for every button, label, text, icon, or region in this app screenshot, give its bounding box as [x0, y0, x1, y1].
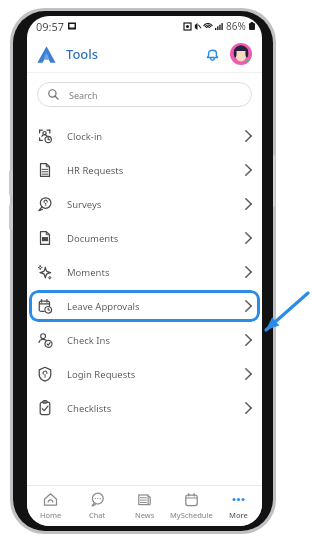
staticText: Check Ins: [67, 334, 110, 347]
staticText: MySchedule: [170, 510, 213, 520]
button[interactable]: Profile: [230, 43, 252, 65]
button[interactable]: Documents: [27, 221, 262, 255]
staticText: Checklists: [67, 402, 112, 415]
button[interactable]: News: [121, 486, 168, 526]
button[interactable]: MySchedule: [168, 486, 215, 526]
button[interactable]: Checklists: [27, 391, 262, 425]
staticText: Home: [40, 510, 62, 520]
button[interactable]: Leave Approvals: [29, 290, 260, 322]
button[interactable]: Chat: [74, 486, 121, 526]
button[interactable]: Notifications: [199, 41, 225, 67]
button[interactable]: HR Requests: [27, 153, 262, 187]
button[interactable]: Moments: [27, 255, 262, 289]
staticText: Login Requests: [67, 368, 136, 381]
staticText: 86%: [226, 19, 246, 33]
staticText: Documents: [67, 232, 119, 245]
staticText: 09:57: [36, 19, 65, 34]
button[interactable]: Home: [27, 486, 74, 526]
button[interactable]: Check Ins: [27, 323, 262, 357]
staticText: Search: [69, 89, 98, 101]
staticText: Moments: [67, 266, 110, 279]
staticText: Surveys: [67, 198, 102, 211]
button[interactable]: More: [215, 486, 262, 526]
button[interactable]: Login Requests: [27, 357, 262, 391]
staticText: HR Requests: [67, 164, 124, 177]
staticText: Clock-in: [67, 130, 103, 143]
button[interactable]: Clock-in: [27, 119, 262, 153]
button[interactable]: Surveys: [27, 187, 262, 221]
staticText: News: [135, 510, 155, 520]
staticText: Chat: [89, 510, 106, 520]
staticText: More: [229, 510, 248, 520]
staticText: Leave Approvals: [67, 300, 140, 313]
staticText: Tools: [66, 45, 99, 63]
button[interactable]: Search: [37, 82, 252, 107]
